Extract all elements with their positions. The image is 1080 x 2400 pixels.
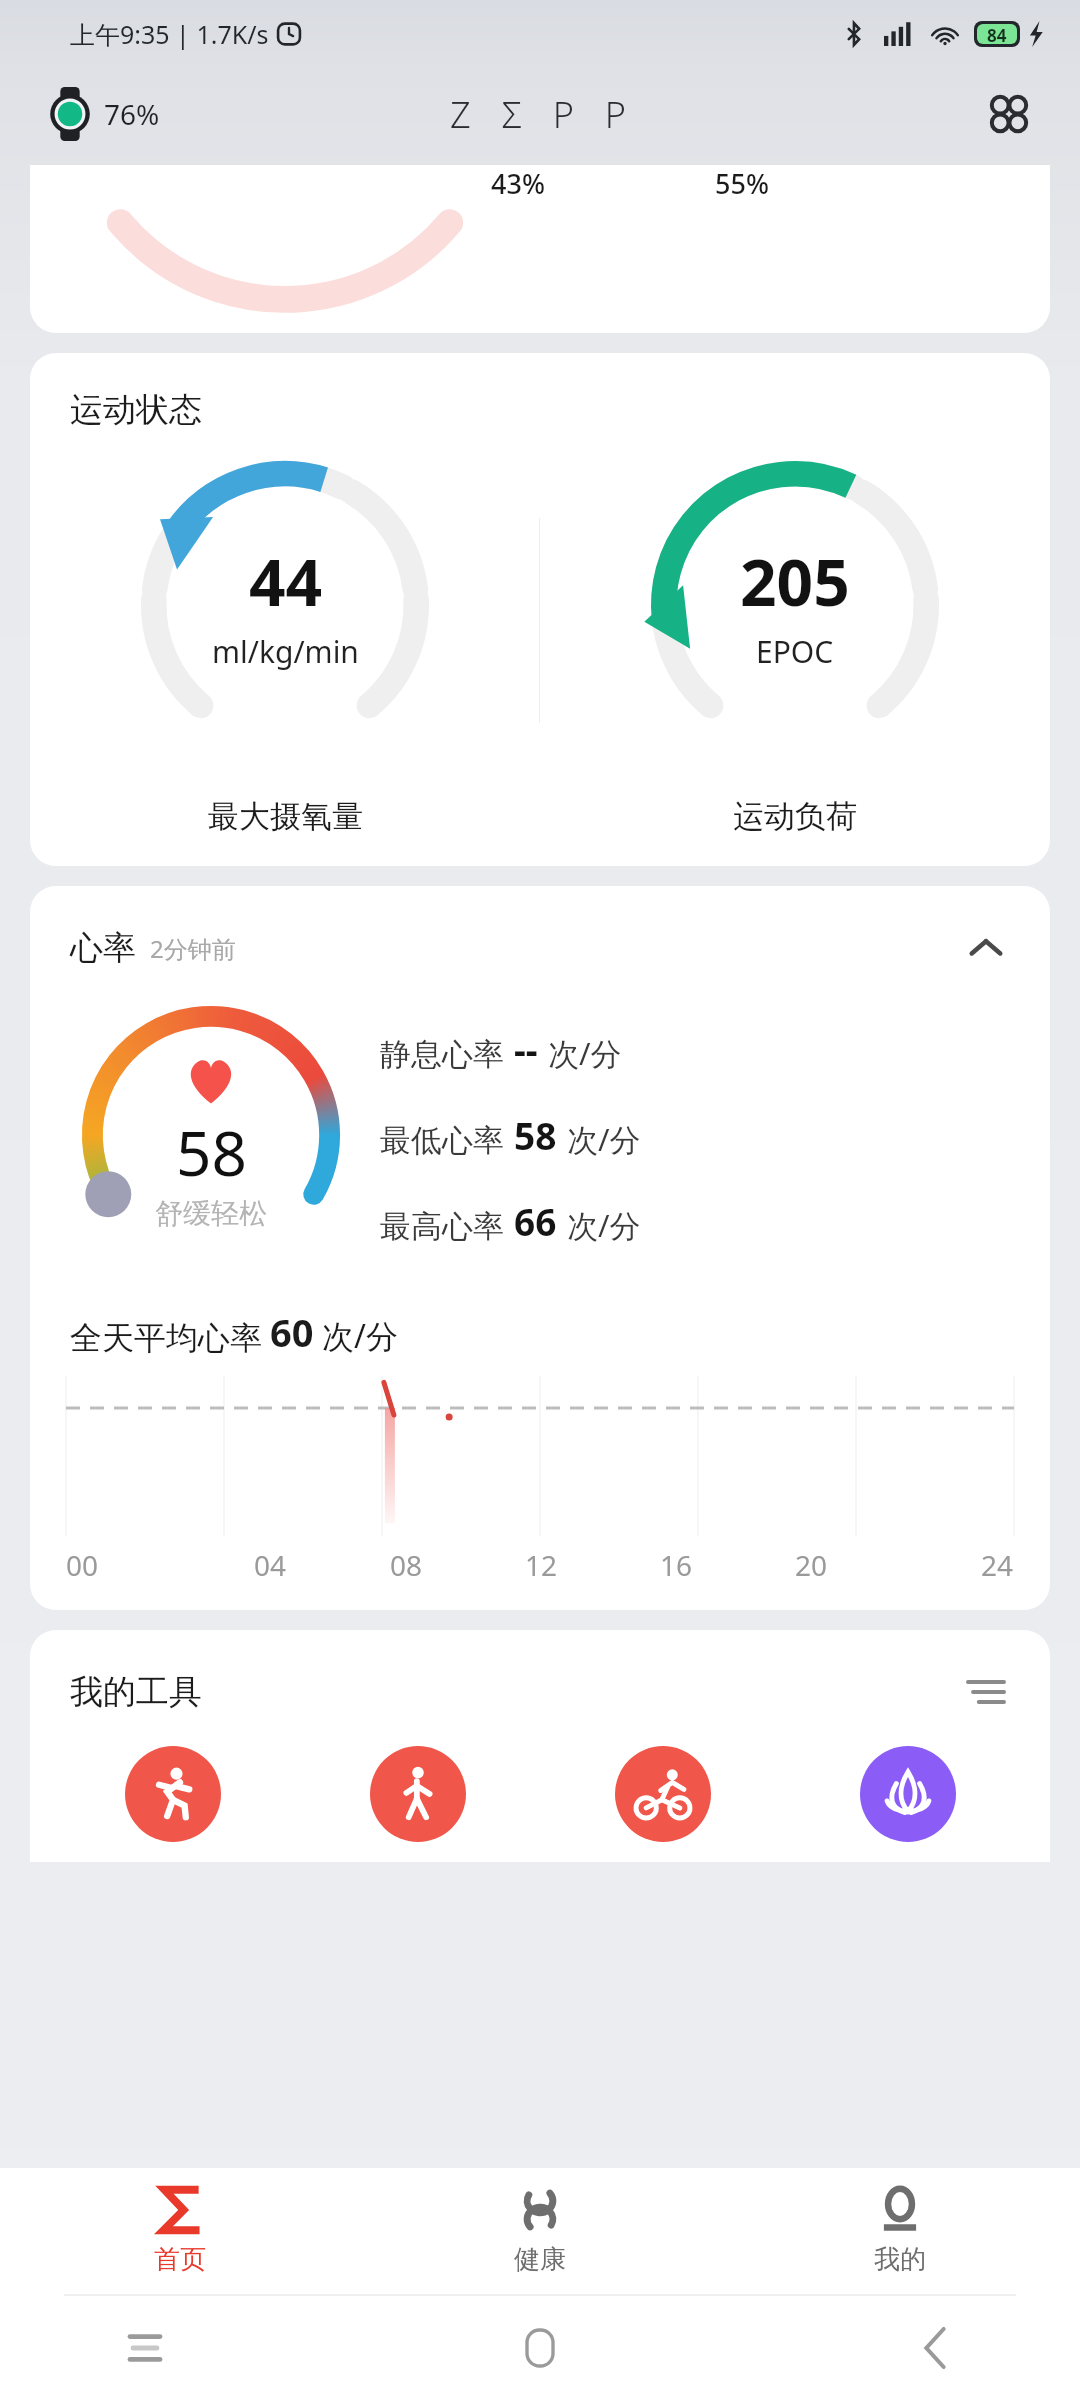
button[interactable]: Walk xyxy=(370,1746,466,1842)
staticText: -- xyxy=(514,1024,538,1074)
staticText: 16 xyxy=(660,1546,693,1584)
staticText: 43% xyxy=(491,165,545,202)
button[interactable]: Home xyxy=(505,2313,575,2383)
staticText: 24 xyxy=(981,1546,1014,1584)
button[interactable]: 首页 xyxy=(0,2168,360,2294)
button[interactable]: 心率 xyxy=(30,886,1050,1610)
staticText: 我的工具 xyxy=(70,1671,202,1713)
staticText: 舒缓轻松 xyxy=(155,1196,267,1231)
button[interactable]: 我的 xyxy=(720,2168,1080,2294)
staticText: 04 xyxy=(254,1546,287,1584)
staticText: 次/分 xyxy=(567,1118,641,1160)
staticText: 66 xyxy=(514,1196,557,1246)
staticText: 55% xyxy=(715,165,769,202)
staticText: 全天平均心率 xyxy=(70,1318,262,1358)
staticText: 最大摄氧量 xyxy=(208,797,363,836)
button[interactable]: 运动状态 xyxy=(30,353,1050,866)
button[interactable]: 43% xyxy=(30,165,1050,333)
staticText: 2分钟前 xyxy=(150,932,236,965)
staticText: 12 xyxy=(525,1546,558,1584)
staticText: 76% xyxy=(104,95,160,133)
staticText: 58 xyxy=(176,1110,247,1194)
button[interactable]: 健康 xyxy=(360,2168,720,2294)
staticText: EPOC xyxy=(756,631,834,672)
staticText: 首页 xyxy=(154,2243,206,2276)
button[interactable]: Apps xyxy=(976,81,1042,147)
staticText: ml/kg/min xyxy=(212,631,359,672)
button[interactable]: Meditation xyxy=(860,1746,956,1842)
staticText: 60 xyxy=(270,1306,314,1358)
staticText: 20 xyxy=(795,1546,828,1584)
staticText: 运动状态 xyxy=(70,389,202,431)
staticText: Z Σ P P xyxy=(450,90,630,139)
staticText: 最低心率 xyxy=(380,1121,504,1160)
staticText: 运动负荷 xyxy=(733,797,857,836)
button[interactable]: 我的工具 xyxy=(30,1630,1050,1862)
staticText: 次/分 xyxy=(567,1204,641,1246)
staticText: 次/分 xyxy=(548,1032,622,1074)
button[interactable]: Run xyxy=(125,1746,221,1842)
button[interactable]: Sort tools xyxy=(958,1664,1014,1720)
button[interactable]: Recents xyxy=(110,2313,180,2383)
staticText: 84 xyxy=(987,24,1007,44)
button[interactable]: Back xyxy=(900,2313,970,2383)
staticText: 健康 xyxy=(514,2243,566,2276)
staticText: 上午9:35 | 1.7K/s xyxy=(70,17,269,51)
staticText: 我的 xyxy=(874,2243,926,2276)
staticText: 00 xyxy=(66,1546,99,1584)
staticText: 次/分 xyxy=(322,1314,398,1358)
button[interactable]: 76% xyxy=(44,83,164,145)
button[interactable]: Cycle xyxy=(615,1746,711,1842)
staticText: 205 xyxy=(740,538,850,625)
staticText: 44 xyxy=(249,538,323,625)
staticText: 08 xyxy=(390,1546,423,1584)
button[interactable]: Collapse xyxy=(958,920,1014,976)
staticText: 心率 xyxy=(70,927,136,969)
staticText: 静息心率 xyxy=(380,1035,504,1074)
staticText: 58 xyxy=(514,1110,557,1160)
staticText: 最高心率 xyxy=(380,1207,504,1246)
